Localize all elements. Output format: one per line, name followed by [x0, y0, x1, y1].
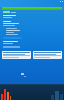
- button[interactable]: Card one: [2, 51, 31, 59]
- button[interactable]: Marker: [21, 73, 24, 75]
- button[interactable]: Card two: [33, 51, 62, 59]
- button[interactable]: Status banner: [2, 7, 62, 10]
